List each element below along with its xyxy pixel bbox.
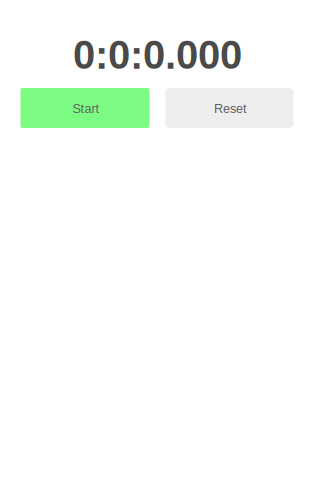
staticText: Start: [72, 101, 99, 116]
button[interactable]: Reset: [165, 88, 293, 128]
staticText: 0:0:0.000: [73, 33, 242, 77]
button[interactable]: Start: [20, 88, 149, 128]
staticText: Reset: [214, 101, 247, 116]
